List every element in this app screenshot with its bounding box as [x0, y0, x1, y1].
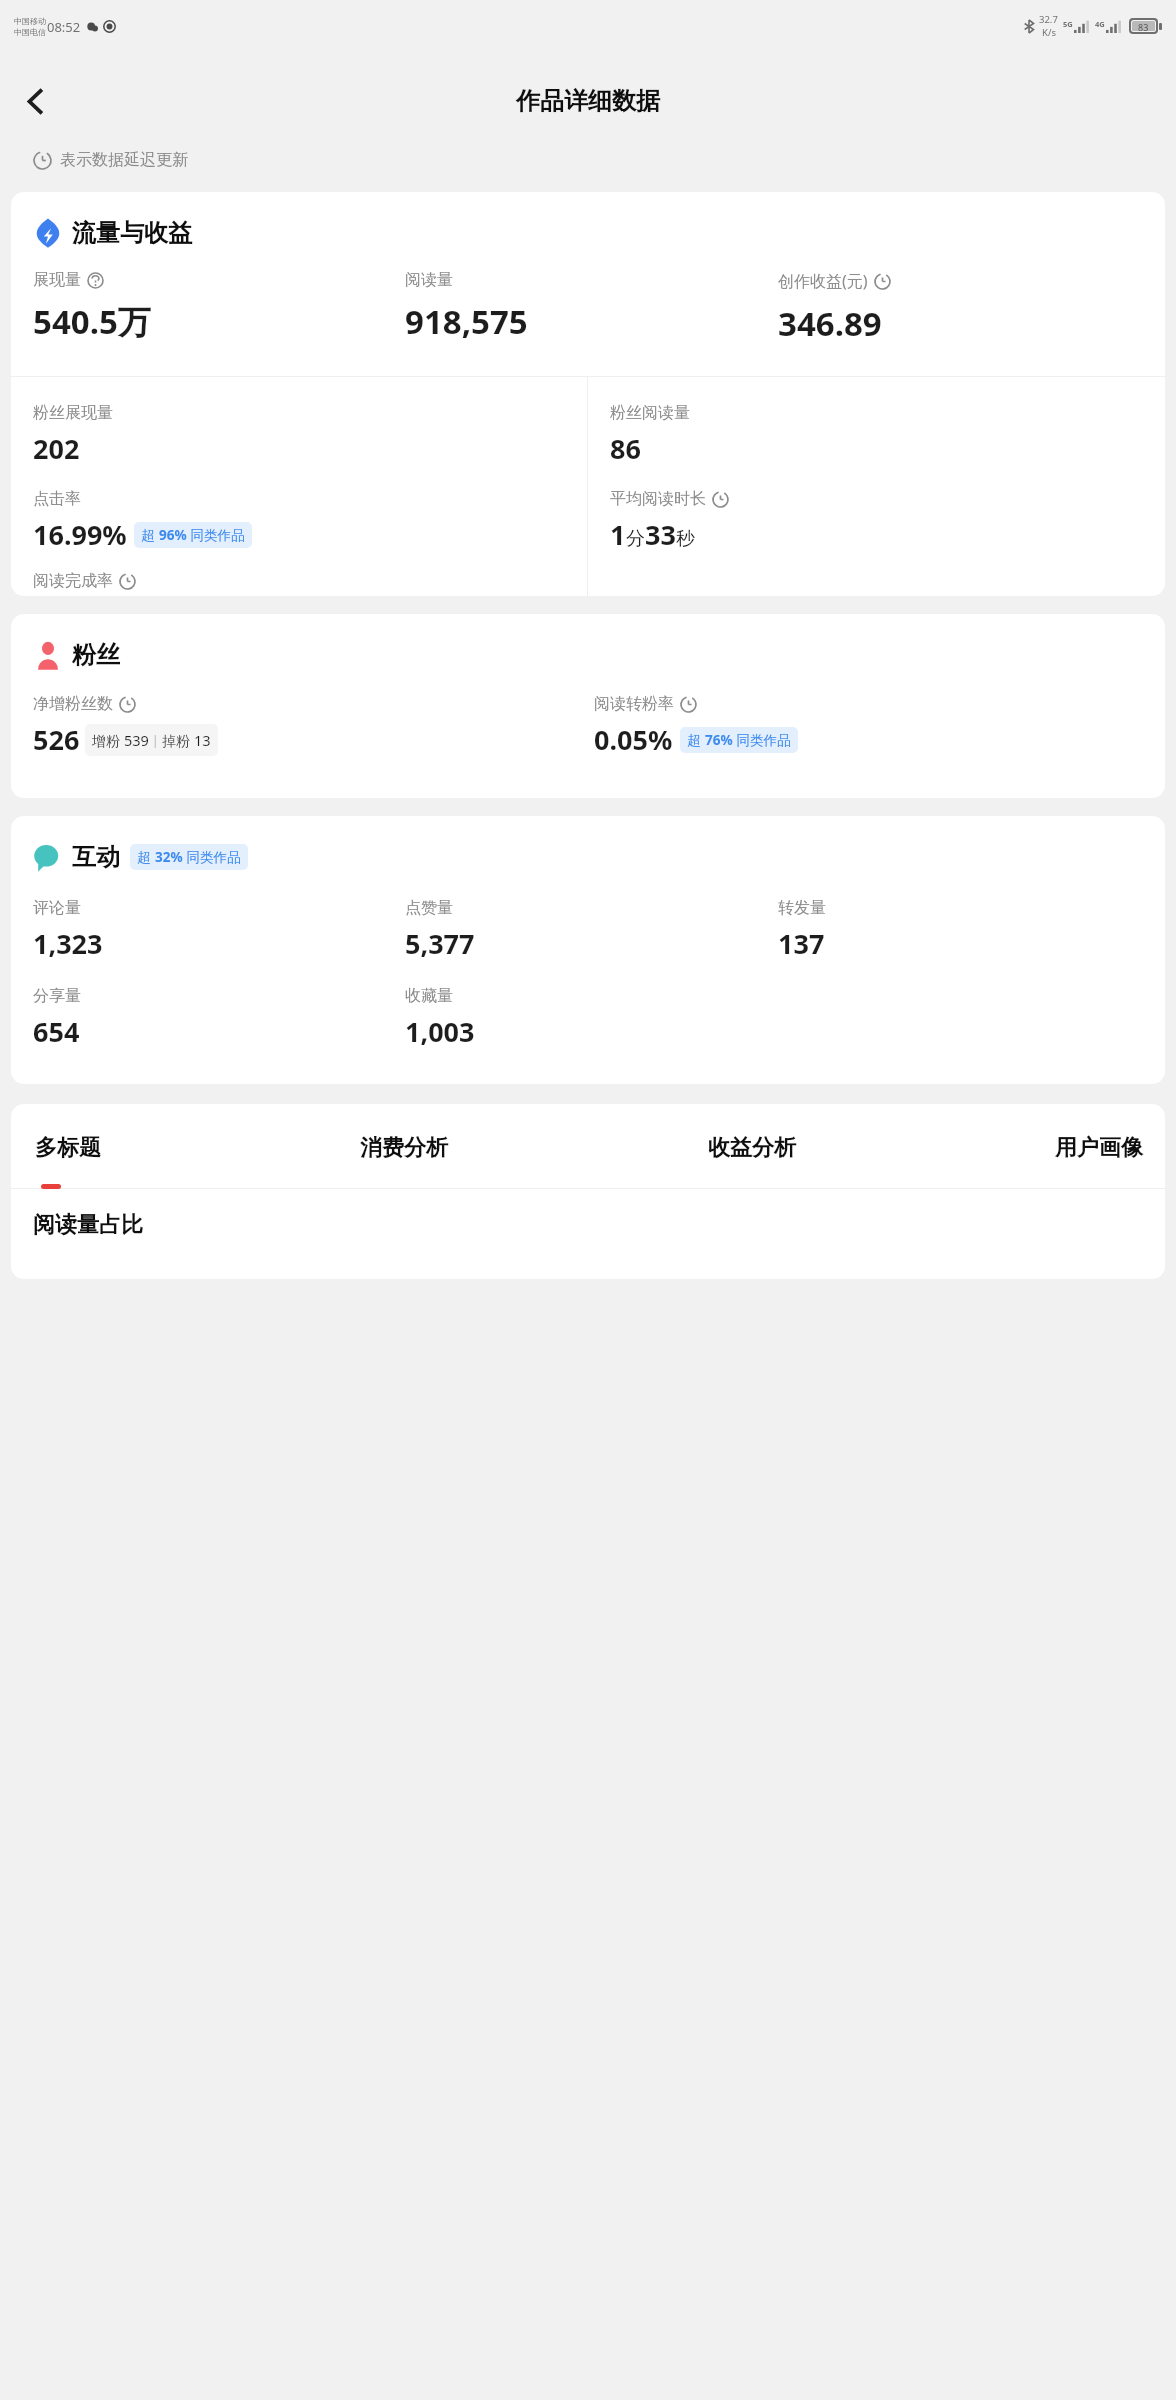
staticText: 137: [778, 925, 825, 962]
staticText: 分享量: [33, 986, 81, 1006]
staticText: 08:52: [47, 18, 81, 36]
staticText: 阅读转粉率: [594, 694, 674, 714]
staticText: 5,377: [405, 925, 475, 962]
staticText: 平均阅读时长: [610, 489, 706, 509]
staticText: 同类作品: [187, 526, 245, 544]
staticText: 用户画像: [1055, 1134, 1143, 1162]
staticText: 阅读完成率: [33, 571, 113, 591]
staticText: 4G: [1095, 19, 1105, 29]
staticText: 超: [687, 731, 705, 749]
staticText: 超: [141, 526, 159, 544]
staticText: 收藏量: [405, 986, 453, 1006]
staticText: 0.05%: [594, 721, 673, 758]
staticText: 点击率: [33, 489, 81, 509]
staticText: 539: [124, 730, 149, 750]
staticText: 32.7: [1039, 13, 1058, 26]
staticText: 86: [610, 430, 641, 467]
staticText: K/s: [1042, 26, 1056, 39]
staticText: 13: [194, 730, 211, 750]
staticText: 1,003: [405, 1013, 475, 1050]
staticText: 76%: [705, 731, 733, 749]
staticText: 粉丝阅读量: [610, 403, 690, 423]
button[interactable]: 收益分析: [706, 1130, 798, 1166]
staticText: 评论量: [33, 898, 81, 918]
staticText: 分: [626, 527, 645, 551]
staticText: 5G: [1063, 19, 1073, 29]
staticText: 中国移动: [14, 16, 46, 26]
staticText: 收益分析: [708, 1134, 796, 1162]
staticText: 多标题: [35, 1134, 101, 1162]
staticText: 秒: [676, 527, 695, 551]
staticText: 16.99%: [33, 516, 127, 553]
staticText: 粉丝展现量: [33, 403, 113, 423]
staticText: 创作收益(元): [778, 270, 868, 292]
staticText: 净增粉丝数: [33, 694, 113, 714]
staticText: 阅读量: [405, 270, 453, 290]
staticText: 526: [33, 721, 80, 758]
staticText: 540.5万: [33, 299, 151, 344]
staticText: |: [149, 732, 162, 748]
staticText: 同类作品: [733, 731, 791, 749]
staticText: 互动: [72, 842, 120, 872]
staticText: 同类作品: [183, 848, 241, 866]
staticText: 96%: [159, 526, 187, 544]
staticText: 展现量: [33, 270, 81, 290]
staticText: 83: [1138, 21, 1149, 31]
staticText: 202: [33, 430, 80, 467]
staticText: 消费分析: [360, 1134, 448, 1162]
button[interactable]: 多标题: [33, 1130, 103, 1166]
staticText: 作品详细数据: [516, 86, 660, 116]
staticText: 点赞量: [405, 898, 453, 918]
staticText: 粉丝: [72, 640, 120, 670]
button[interactable]: Back: [8, 73, 64, 129]
staticText: 阅读量占比: [33, 1211, 143, 1239]
staticText: 346.89: [778, 301, 882, 346]
staticText: 32%: [155, 848, 183, 866]
button[interactable]: 消费分析: [358, 1130, 450, 1166]
staticText: 中国电信: [14, 27, 46, 37]
button[interactable]: 用户画像: [1053, 1130, 1145, 1166]
staticText: 1: [610, 516, 626, 553]
staticText: 转发量: [778, 898, 826, 918]
staticText: 增粉: [92, 731, 124, 750]
staticText: 超: [137, 848, 155, 866]
staticText: 流量与收益: [72, 218, 192, 248]
staticText: 1,323: [33, 925, 103, 962]
staticText: 表示数据延迟更新: [60, 150, 188, 170]
staticText: 654: [33, 1013, 80, 1050]
staticText: 掉粉: [162, 731, 194, 750]
staticText: 33: [645, 516, 676, 553]
staticText: 918,575: [405, 299, 528, 344]
